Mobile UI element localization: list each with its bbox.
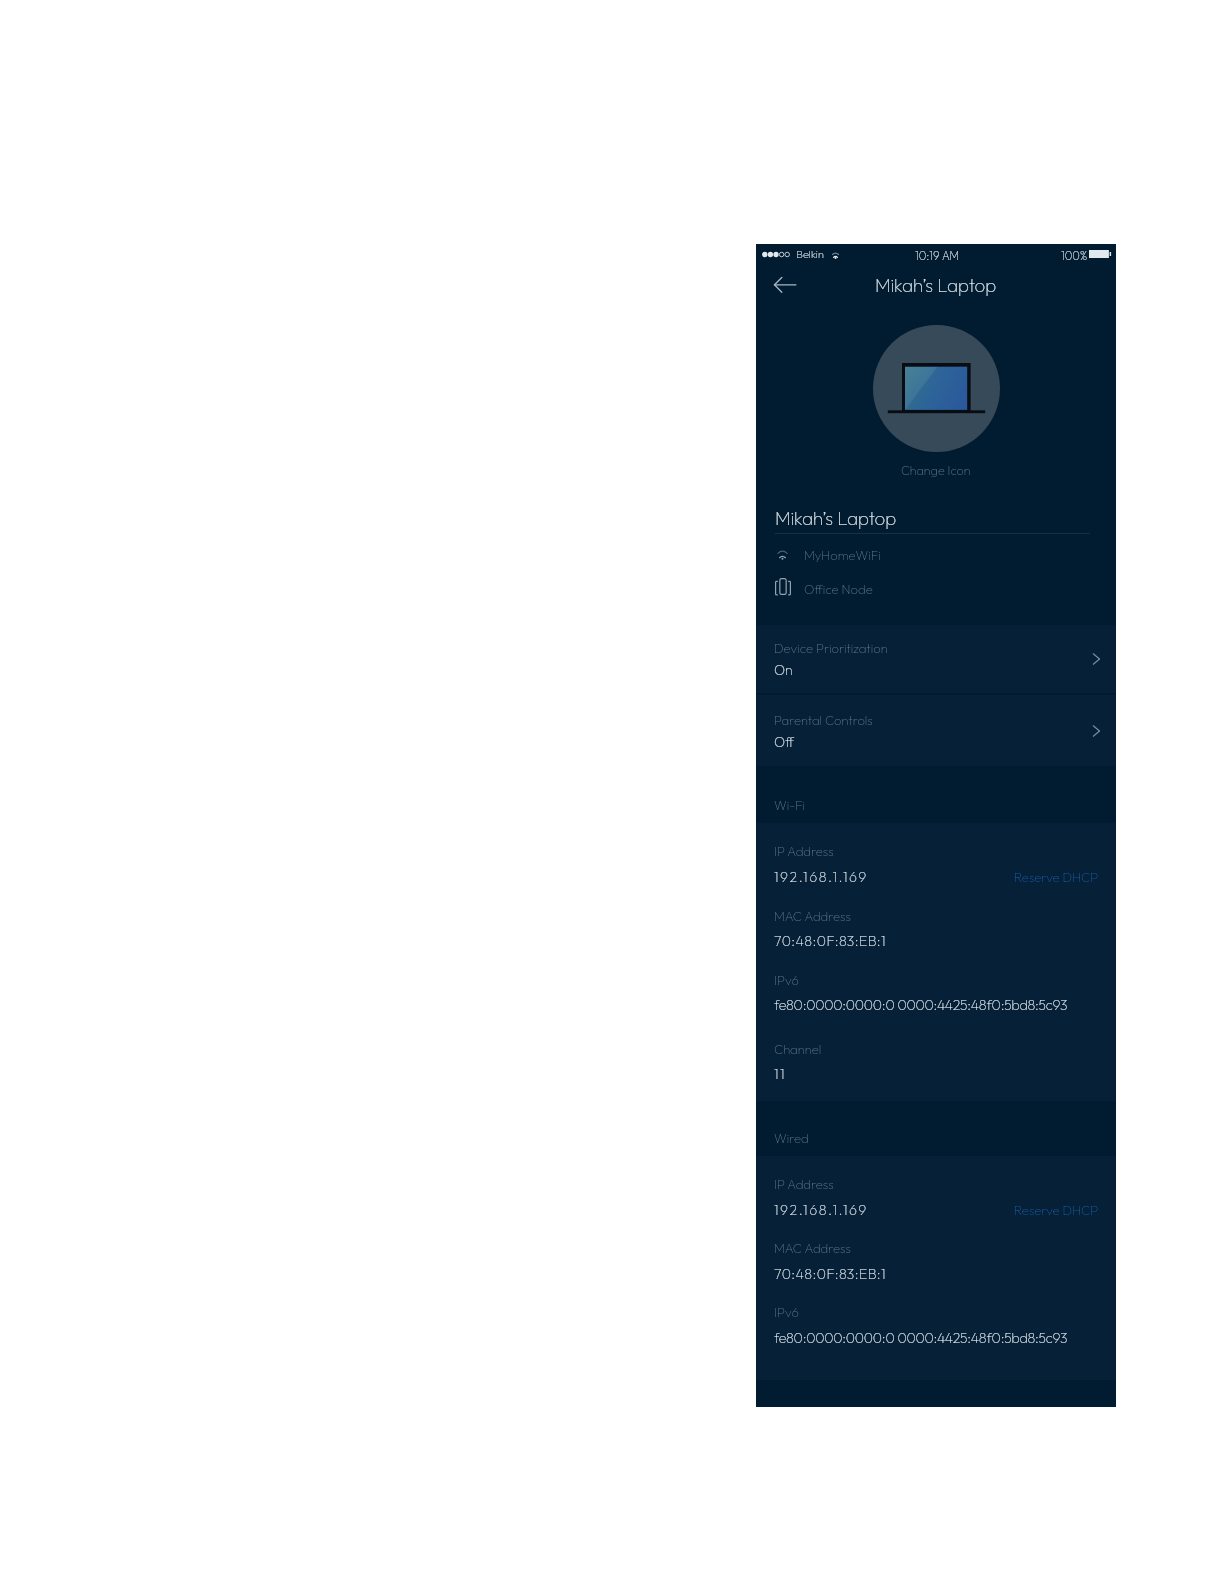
staticText: IP Address xyxy=(774,1176,834,1192)
staticText: Wi-Fi xyxy=(774,797,806,813)
staticText: IPv6 xyxy=(774,1304,799,1320)
button[interactable]: Parental Controls xyxy=(756,695,1116,766)
staticText: 70:48:0F:83:EB:1 xyxy=(774,932,887,950)
staticText: Mikah’s Laptop xyxy=(875,273,997,297)
button[interactable]: MyHomeWiFi xyxy=(756,541,1116,569)
staticText: Wired xyxy=(774,1130,809,1146)
staticText: 11 xyxy=(774,1065,787,1083)
staticText: Belkin xyxy=(796,247,824,261)
button[interactable]: Device Prioritization xyxy=(756,625,1116,693)
staticText: 70:48:0F:83:EB:1 xyxy=(774,1265,887,1283)
button[interactable]: Reserve DHCP xyxy=(756,866,1099,888)
staticText: 192.168.1.169 xyxy=(774,1201,868,1219)
button[interactable]: Change device icon xyxy=(873,325,1000,452)
staticText: Office Node xyxy=(804,581,873,597)
staticText: IPv6 xyxy=(774,972,799,988)
staticText: Channel xyxy=(774,1041,822,1057)
staticText: IP Address xyxy=(774,843,834,859)
staticText: On xyxy=(774,661,793,679)
staticText: Parental Controls xyxy=(774,712,873,728)
staticText: Device Prioritization xyxy=(774,640,888,656)
staticText: fe80:0000:0000:0 0000:4425:48f0:5bd8:5c9… xyxy=(774,1329,1068,1347)
staticText: 100% xyxy=(1061,248,1088,262)
staticText: Change Icon xyxy=(901,462,971,478)
button[interactable]: Change Icon xyxy=(756,459,1116,481)
button[interactable]: Reserve DHCP xyxy=(756,1199,1099,1221)
button[interactable]: Back xyxy=(766,268,804,302)
button[interactable]: Office Node xyxy=(756,575,1116,603)
staticText: Mikah’s Laptop xyxy=(775,506,897,530)
staticText: Reserve DHCP xyxy=(1014,869,1099,885)
staticText: Off xyxy=(774,733,795,751)
staticText: Reserve DHCP xyxy=(1014,1202,1099,1218)
staticText: 192.168.1.169 xyxy=(774,868,868,886)
staticText: 10:19 AM xyxy=(915,248,960,262)
staticText: MAC Address xyxy=(774,1240,851,1256)
staticText: fe80:0000:0000:0 0000:4425:48f0:5bd8:5c9… xyxy=(774,996,1068,1014)
staticText: MAC Address xyxy=(774,908,851,924)
staticText: MyHomeWiFi xyxy=(804,547,881,563)
